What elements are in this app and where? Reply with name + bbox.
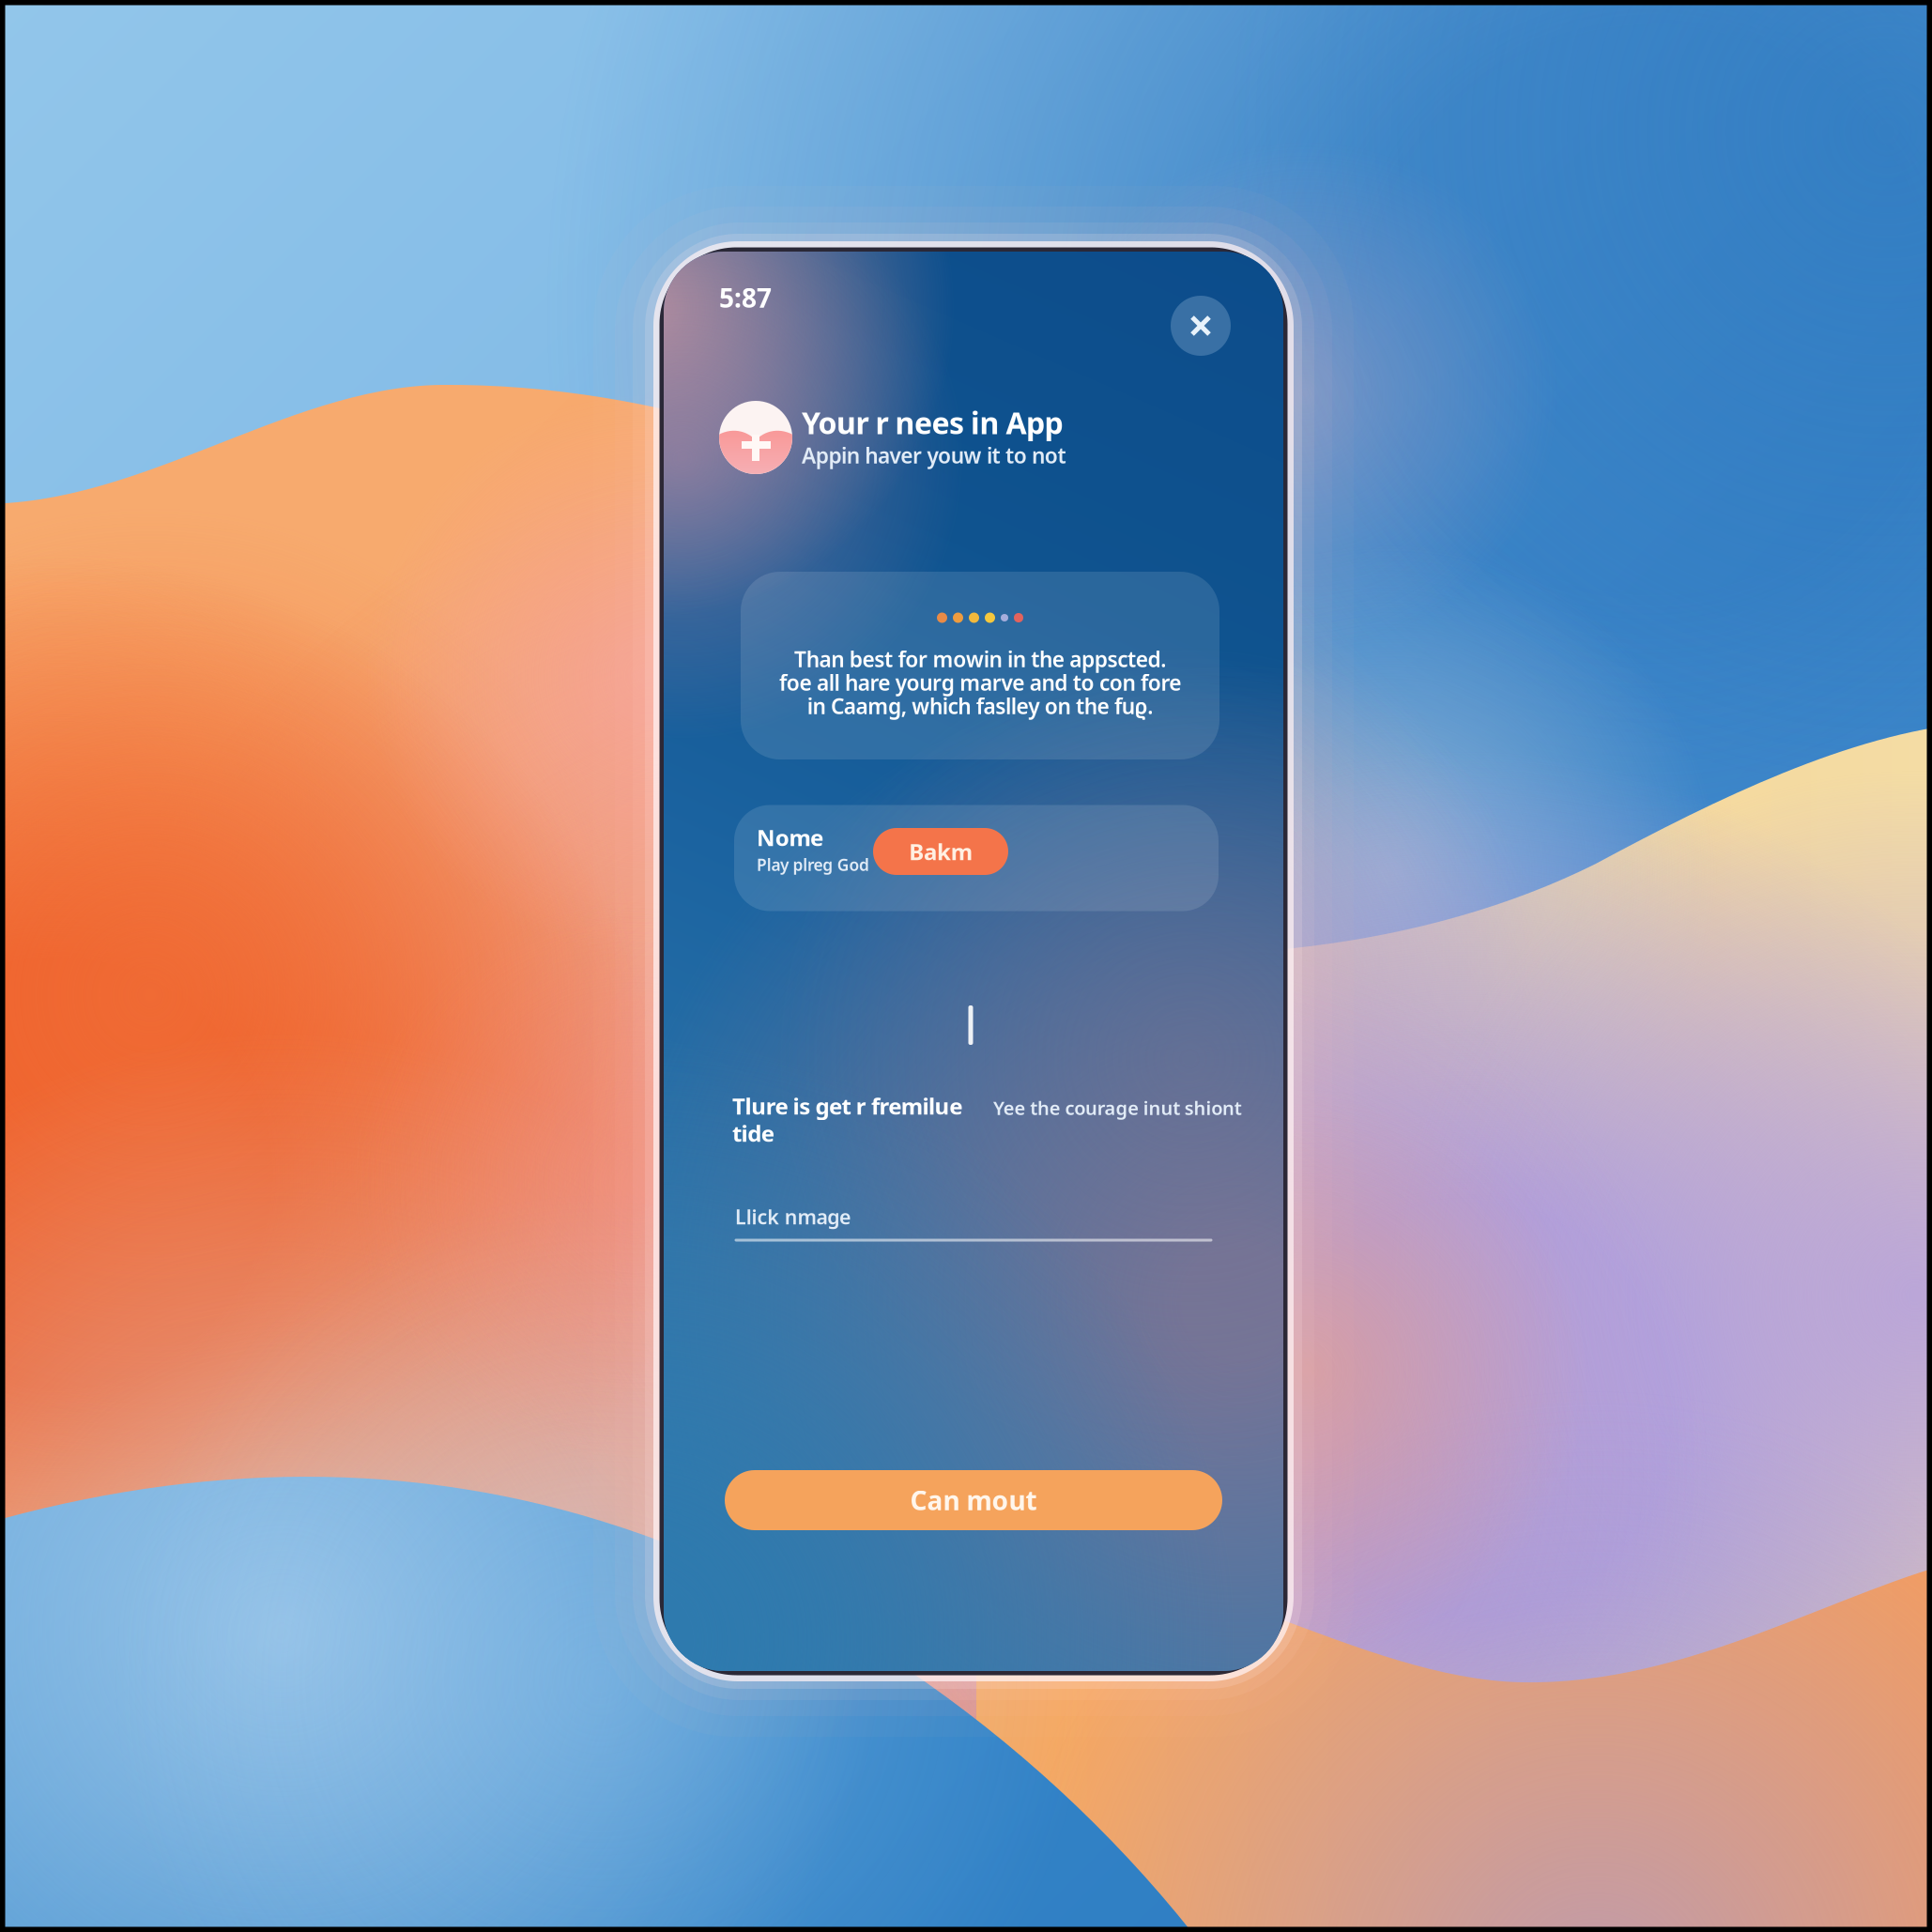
staticText: in Caamg, which faslley on the fuϱ. bbox=[807, 692, 1153, 720]
staticText: Nome bbox=[757, 822, 823, 852]
button[interactable]: Close bbox=[1171, 296, 1231, 356]
staticText: Than best for mowin in the appscted. bbox=[794, 645, 1166, 673]
button[interactable]: Can mout bbox=[725, 1470, 1222, 1530]
staticText: foe all hare yourg marve and to con fore bbox=[779, 668, 1181, 697]
button[interactable]: Bakm bbox=[873, 828, 1008, 875]
staticText: Appin haver youw it to not bbox=[802, 441, 1066, 469]
staticText: Play plreg God bbox=[757, 854, 869, 875]
staticText: 5:87 bbox=[719, 280, 772, 315]
staticText: Tlure is get r fremilue bbox=[732, 1091, 962, 1121]
staticText: Your r nees in App bbox=[802, 403, 1063, 442]
staticText: Bakm bbox=[909, 837, 972, 866]
staticText: Llick nmage bbox=[735, 1203, 851, 1230]
staticText: Yee the courage inut shiont bbox=[993, 1095, 1242, 1120]
staticText: tide bbox=[732, 1118, 774, 1148]
staticText: Can mout bbox=[910, 1483, 1037, 1518]
